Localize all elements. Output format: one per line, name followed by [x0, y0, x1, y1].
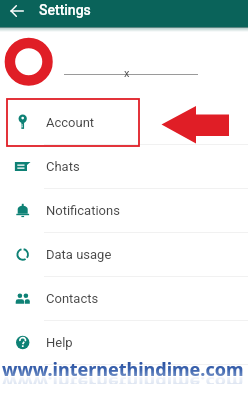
- button[interactable]: Data usage: [0, 233, 248, 277]
- staticText: Account: [46, 115, 95, 130]
- button[interactable]: Contacts: [0, 277, 248, 321]
- staticText: Notifications: [46, 203, 120, 218]
- staticText: www.internethindime.com: [2, 357, 244, 382]
- button[interactable]: Chats: [0, 145, 248, 189]
- staticText: Data usage: [46, 247, 112, 262]
- staticText: Help: [46, 335, 73, 350]
- staticText: Chats: [46, 159, 80, 174]
- button[interactable]: Notifications: [0, 189, 248, 233]
- button[interactable]: Back: [7, 1, 27, 21]
- staticText: x: [124, 67, 130, 80]
- button[interactable]: Help: [0, 321, 248, 365]
- staticText: Contacts: [46, 291, 99, 306]
- button[interactable]: Account: [0, 101, 248, 145]
- staticText: Settings: [39, 2, 91, 18]
